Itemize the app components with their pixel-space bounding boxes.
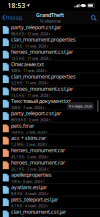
staticText: 13,5 КБ · 11 янв. 2024 г. bbox=[11, 55, 52, 61]
staticText: pets_teleport.esl.jar bbox=[11, 196, 58, 203]
button[interactable]: heroes_monument.rar bbox=[0, 159, 100, 172]
staticText: Текстовый документ.txt bbox=[11, 97, 71, 105]
staticText: heroes_monument.rar bbox=[11, 159, 65, 166]
staticText: 13,5 КБ · 11 янв. 2024 г. bbox=[11, 92, 52, 98]
button[interactable]: party_teleport.cst.jar bbox=[0, 110, 100, 122]
button[interactable]: heroes_monument.rar bbox=[0, 147, 100, 159]
staticText: clan_monument.properties bbox=[11, 36, 76, 43]
staticText: 88,0 КБ · 12 янв. 2024 г. bbox=[11, 31, 52, 36]
staticText: pets.fr.rar bbox=[11, 122, 34, 129]
staticText: 18:53 bbox=[7, 1, 25, 10]
button[interactable]: acc + skins.rar bbox=[0, 135, 100, 147]
staticText: heroes_monument.cst.jar bbox=[11, 48, 73, 55]
staticText: 328 Б · 7 янв. 2024 г. bbox=[11, 105, 46, 110]
staticText: 3,2 КБ · 11 янв. 2024 г. bbox=[11, 43, 50, 48]
staticText: party_teleport.cst.jar bbox=[11, 24, 61, 31]
staticText: clan_monument.properties bbox=[11, 73, 76, 80]
staticText: 43,1 КБ · 2 янв. 2024 г. bbox=[11, 154, 50, 159]
staticText: heroes_monument.rar bbox=[11, 147, 65, 154]
button[interactable]: Описание.txt bbox=[0, 61, 100, 73]
staticText: 1,2 МБ · 2 янв. 2024 г. bbox=[11, 142, 49, 147]
button[interactable]: party_teleport.cst.jar bbox=[0, 24, 100, 36]
button[interactable]: ayatlans.esl.jar bbox=[0, 184, 100, 196]
button[interactable]: pets.fr.rar bbox=[0, 122, 100, 135]
staticText: 16 объектов bbox=[39, 18, 60, 24]
staticText: GrandTheft bbox=[36, 11, 64, 18]
staticText: Январь 2024 bbox=[69, 103, 92, 109]
staticText: Назад bbox=[6, 14, 22, 21]
staticText: heroes_monument.cst.jar bbox=[11, 85, 73, 92]
staticText: 3,2 КБ · 11 янв. 2024 г. bbox=[11, 80, 50, 85]
staticText: party_teleport.cst.jar bbox=[11, 110, 61, 117]
staticText: Описание.txt bbox=[11, 61, 44, 68]
staticText: acc + skins.rar bbox=[11, 134, 46, 141]
staticText: ayatlans.esl.jar bbox=[11, 184, 47, 191]
staticText: 4,1 КБ · 4 нояб. 2023 г. bbox=[11, 203, 50, 208]
button[interactable]: heroes_monument.cst.jar bbox=[0, 49, 100, 61]
button[interactable]: Текстовый документ.txt bbox=[0, 98, 100, 110]
staticText: 8,8 КБ · 4 нояб. 2023 г. bbox=[11, 191, 50, 196]
button[interactable]: apeller.properties bbox=[0, 172, 100, 184]
staticText: clan_monument.cst.jar bbox=[11, 208, 66, 215]
staticText: 764 КБ · 2 янв. 2024 г. bbox=[11, 129, 49, 135]
staticText: 869,8 КБ · 2 янв. 2024 г. bbox=[11, 117, 52, 122]
button[interactable]: heroes_monument.cst.jar bbox=[0, 85, 100, 98]
staticText: 190 Б · 8 дек. 2023 г. bbox=[11, 178, 46, 184]
button[interactable]: clan_monument.cst.jar bbox=[0, 208, 100, 217]
staticText: apeller.properties bbox=[11, 171, 52, 178]
button[interactable]: clan_monument.properties bbox=[0, 36, 100, 49]
button[interactable]: clan_monument.properties bbox=[0, 73, 100, 85]
button[interactable]: Search bbox=[90, 12, 100, 23]
staticText: 11,8 КБ · 4 нояб. 2023 г. bbox=[11, 215, 52, 217]
button[interactable]: Назад bbox=[0, 12, 22, 23]
staticText: 26,1 КБ · 2 янв. 2024 г. bbox=[11, 166, 50, 171]
button[interactable]: pets_teleport.esl.jar bbox=[0, 196, 100, 208]
staticText: 328 Б · 11 янв. 2024 г. bbox=[11, 68, 48, 73]
